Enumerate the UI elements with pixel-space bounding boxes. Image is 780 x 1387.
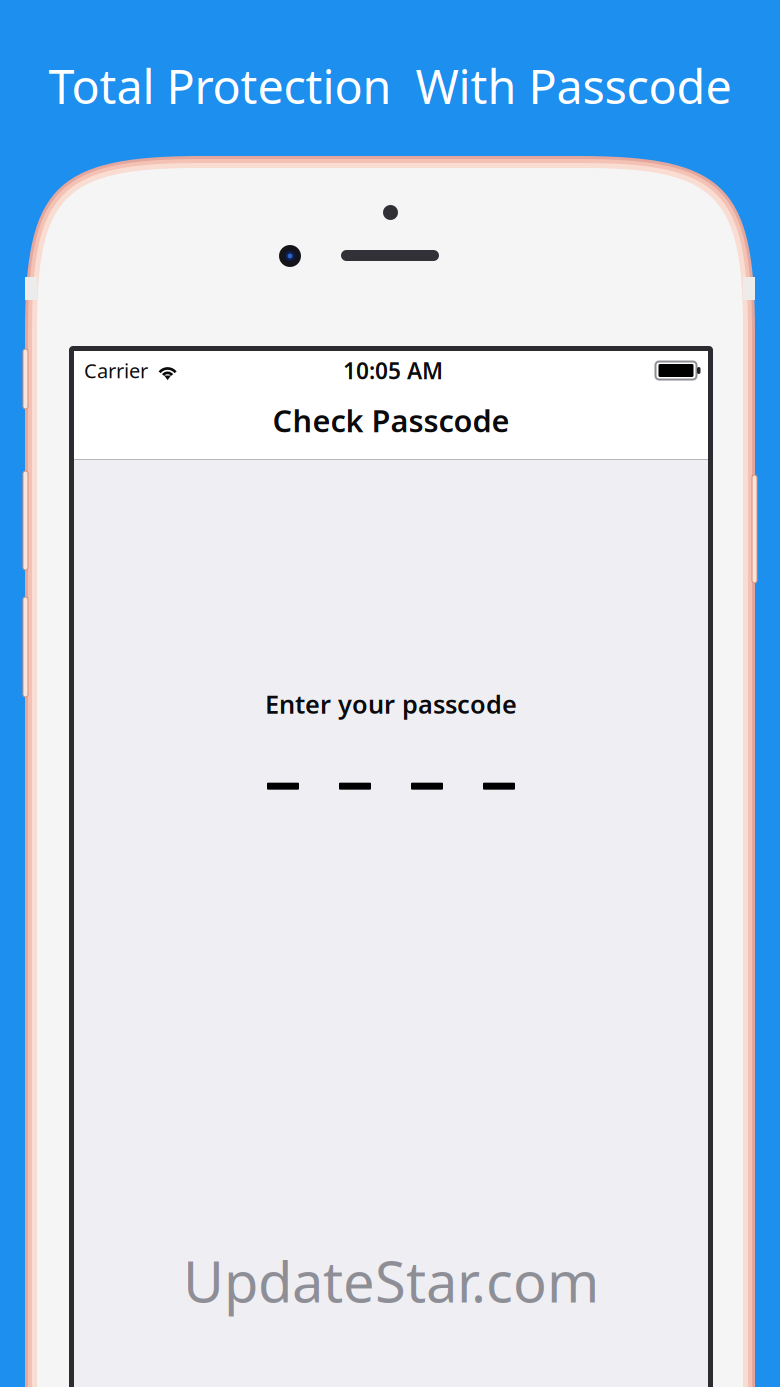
staticText: UpdateStar.com: [183, 1244, 599, 1318]
staticText: Check Passcode: [272, 400, 509, 441]
button[interactable]: Passcode digit: [335, 769, 375, 804]
button[interactable]: Passcode digit: [479, 769, 519, 804]
staticText: 10:05 AM: [343, 355, 443, 385]
staticText: Enter your passcode: [265, 687, 517, 721]
button[interactable]: Passcode digit: [263, 769, 303, 804]
staticText: Total Protection With Passcode: [48, 55, 731, 117]
staticText: Carrier: [84, 357, 148, 384]
button[interactable]: Passcode digit: [407, 769, 447, 804]
